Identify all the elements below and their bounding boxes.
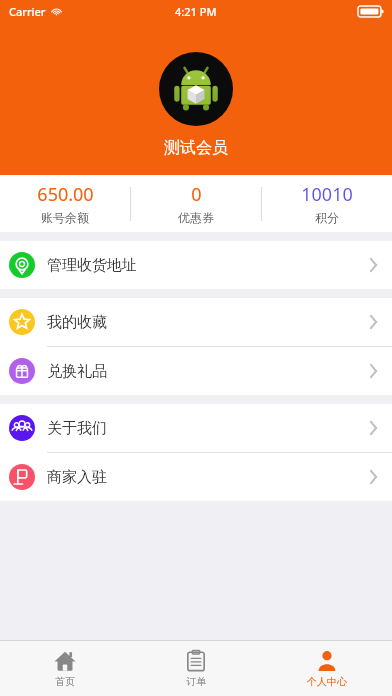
- button[interactable]: 商家入驻: [0, 453, 392, 501]
- button[interactable]: 个人中心: [261, 641, 392, 696]
- button[interactable]: 650.00: [0, 182, 130, 225]
- staticText: 兑换礼品: [47, 362, 107, 381]
- staticText: 订单: [186, 675, 206, 688]
- staticText: Carrier: [9, 4, 46, 19]
- button[interactable]: 兑换礼品: [0, 347, 392, 395]
- staticText: 账号余额: [41, 210, 89, 225]
- staticText: 积分: [315, 210, 339, 225]
- staticText: 10010: [301, 182, 353, 207]
- staticText: 我的收藏: [47, 313, 107, 332]
- staticText: 650.00: [37, 182, 94, 207]
- button[interactable]: 订单: [130, 641, 261, 696]
- staticText: 0: [191, 182, 202, 207]
- button[interactable]: 我的收藏: [0, 298, 392, 346]
- button[interactable]: 0: [131, 182, 261, 225]
- staticText: 优惠券: [178, 210, 214, 225]
- button[interactable]: 首页: [0, 641, 130, 696]
- staticText: 管理收货地址: [47, 256, 137, 275]
- staticText: 4:21 PM: [175, 4, 217, 19]
- staticText: 测试会员: [164, 138, 228, 158]
- button[interactable]: 管理收货地址: [0, 241, 392, 289]
- button[interactable]: 关于我们: [0, 404, 392, 452]
- staticText: 关于我们: [47, 419, 107, 438]
- staticText: 首页: [55, 675, 75, 688]
- staticText: 个人中心: [307, 675, 347, 688]
- button[interactable]: 10010: [262, 182, 392, 225]
- staticText: 商家入驻: [47, 468, 107, 487]
